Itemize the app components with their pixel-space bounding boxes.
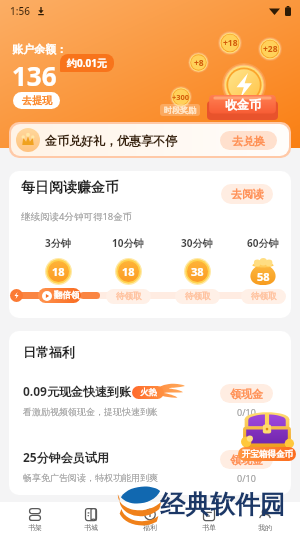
staticText: 账户余额： — [12, 42, 67, 56]
button[interactable]: 收金币 — [207, 95, 278, 120]
button[interactable]: 我的 — [237, 502, 293, 533]
button[interactable]: 开宝箱得金币 — [241, 409, 293, 450]
staticText: 3分钟 — [45, 236, 71, 250]
staticText: +8 — [194, 57, 204, 69]
staticText: 去阅读 — [231, 187, 264, 201]
button[interactable]: 书架 — [7, 502, 63, 533]
staticText: +28 — [263, 43, 278, 55]
staticText: 25分钟会员试用 — [23, 449, 109, 465]
staticText: 金币兑好礼，优惠享不停 — [45, 133, 177, 148]
staticText: 30分钟 — [181, 236, 213, 250]
button[interactable]: 金币兑好礼，优惠享不停 — [11, 124, 289, 156]
staticText: 18 — [122, 264, 135, 279]
button[interactable]: 去兑换 — [220, 131, 277, 150]
staticText: 书单 — [202, 523, 216, 532]
staticText: 10分钟 — [112, 236, 144, 250]
staticText: 待领取 — [251, 291, 277, 302]
button[interactable]: 去阅读 — [221, 184, 273, 204]
staticText: 日常福利 — [23, 344, 75, 360]
button[interactable]: 开宝箱得金币 — [238, 447, 296, 461]
staticText: 0.09元现金快速到账 — [23, 383, 131, 399]
staticText: 时段奖励 — [164, 105, 196, 115]
staticText: 看激励视频领现金，提现快速到账 — [23, 406, 158, 417]
staticText: 领现金 — [230, 387, 263, 401]
button[interactable]: 书城 — [63, 502, 119, 533]
button[interactable]: 福利 — [122, 502, 178, 533]
staticText: 58 — [257, 269, 270, 284]
staticText: 书城 — [84, 523, 98, 532]
staticText: 60分钟 — [247, 236, 279, 250]
staticText: +18 — [223, 37, 238, 49]
staticText: +300 — [172, 92, 190, 102]
staticText: 每日阅读赚金币 — [21, 179, 119, 197]
button[interactable]: 领现金 — [220, 450, 273, 469]
button[interactable]: 待领取 — [175, 289, 220, 304]
staticText: 火热 — [140, 387, 157, 398]
staticText: 18 — [52, 264, 65, 279]
staticText: 翻倍领 — [54, 290, 80, 301]
button[interactable]: 翻倍领 — [38, 288, 81, 303]
button[interactable]: 待领取 — [241, 289, 286, 304]
staticText: 0/10 — [237, 406, 256, 418]
staticText: 约0.01元 — [67, 56, 107, 70]
staticText: 收金币 — [225, 97, 261, 112]
staticText: 136 — [12, 58, 57, 93]
staticText: 0/10 — [237, 472, 256, 484]
staticText: 畅享免广告阅读，特权功能用到爽 — [23, 472, 158, 483]
button[interactable]: 书单 — [181, 502, 237, 533]
staticText: 待领取 — [185, 291, 211, 302]
button[interactable]: 去提现 — [13, 92, 60, 109]
staticText: 去兑换 — [232, 134, 265, 148]
staticText: 福利 — [143, 523, 157, 532]
staticText: 38 — [191, 264, 204, 279]
button[interactable]: 待领取 — [106, 289, 151, 304]
staticText: 书架 — [28, 523, 42, 532]
staticText: 领现金 — [230, 453, 263, 467]
staticText: 继续阅读4分钟可得18金币 — [21, 210, 133, 223]
staticText: 1:56 — [10, 4, 30, 18]
staticText: 我的 — [258, 523, 272, 532]
button[interactable]: 领现金 — [220, 384, 273, 403]
staticText: 待领取 — [116, 291, 142, 302]
staticText: 经典软件园 — [160, 489, 285, 520]
staticText: 开宝箱得金币 — [242, 449, 293, 460]
staticText: 去提现 — [22, 94, 52, 107]
